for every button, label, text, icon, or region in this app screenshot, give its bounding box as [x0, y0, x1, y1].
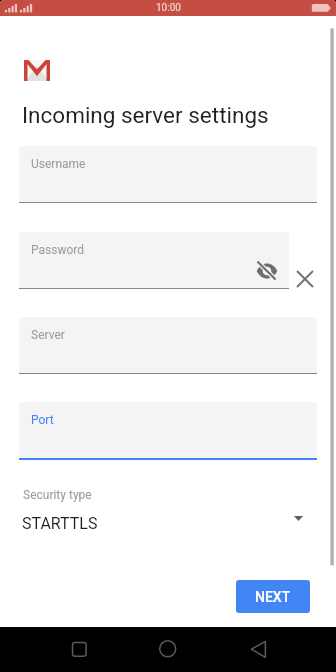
button[interactable]: Password: [19, 232, 289, 289]
button[interactable]: Home: [144, 627, 192, 672]
staticText: Server: [31, 328, 65, 342]
staticText: Port: [31, 413, 54, 427]
staticText: NEXT: [255, 589, 291, 605]
staticText: Password: [31, 243, 85, 257]
button[interactable]: Clear: [294, 268, 315, 289]
button[interactable]: Security type: [19, 488, 317, 532]
button[interactable]: Back: [234, 627, 282, 672]
staticText: Security type: [23, 488, 92, 502]
other: Show password: [255, 259, 279, 283]
staticText: Incoming server settings: [22, 102, 269, 128]
staticText: 10:00: [156, 2, 181, 14]
button[interactable]: NEXT: [236, 580, 310, 613]
staticText: STARTTLS: [22, 514, 98, 533]
button[interactable]: Server: [19, 317, 317, 374]
button[interactable]: Port: [19, 402, 317, 460]
button[interactable]: Username: [19, 146, 317, 203]
staticText: Username: [31, 157, 86, 171]
button[interactable]: Recent apps: [55, 627, 103, 672]
